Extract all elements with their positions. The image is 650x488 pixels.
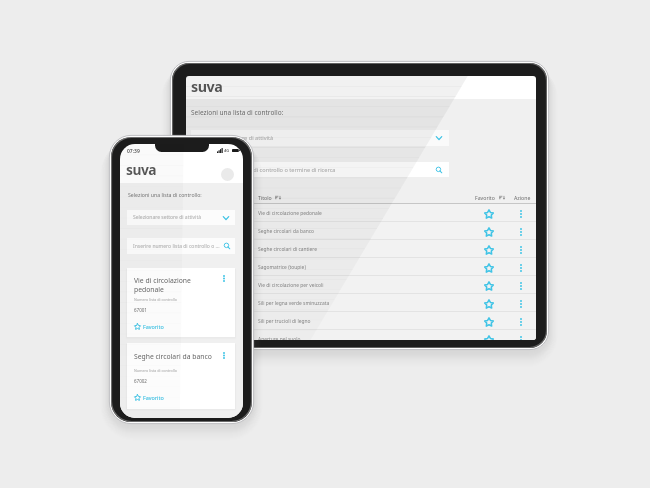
staticText: Seghe circolari da banco (134, 352, 212, 361)
button[interactable]: Account (221, 168, 234, 181)
staticText: Selezionare settore di attività (197, 134, 274, 142)
button[interactable]: Sili per legna verde sminuzzata (186, 294, 536, 312)
staticText: Numero lista di controllo (134, 297, 177, 302)
staticText: Vie di circolazione per veicoli (258, 282, 324, 289)
staticText: Favorito (143, 394, 164, 401)
staticText: Seghe circolari da banco (258, 228, 315, 235)
staticText: Selezioni una lista di controllo: (128, 191, 202, 198)
staticText: Selezioni una lista di controllo: (191, 108, 284, 117)
staticText: Sili per trucioli di legno (258, 318, 311, 325)
staticText: Azione (514, 194, 531, 201)
staticText: suva (126, 160, 157, 179)
button[interactable]: Vie di circolazione per veicoli (186, 276, 536, 294)
staticText: Numero lista di controllo (134, 368, 177, 373)
button[interactable]: Seghe circolari da banco (127, 343, 235, 409)
staticText: 07:39 (127, 148, 140, 155)
staticText: Aperture nel suolo (258, 336, 301, 340)
button[interactable]: Sagomatrice (toupie) (186, 258, 536, 276)
staticText: 67001 (134, 307, 147, 313)
staticText: pedonale (134, 285, 164, 294)
button[interactable]: Sili per trucioli di legno (186, 312, 536, 330)
staticText: 67002 (134, 378, 147, 384)
button[interactable]: Seghe circolari da banco (186, 222, 536, 240)
staticText: suva (191, 77, 223, 96)
button[interactable]: More options (223, 352, 225, 359)
button[interactable]: Vie di circolazione pedonale (186, 204, 536, 222)
staticText: Sili per legna verde sminuzzata (258, 300, 330, 307)
staticText: Selezionare settore di attività (133, 214, 202, 221)
button[interactable]: Vie di circolazione (127, 268, 235, 337)
button[interactable]: More options (223, 275, 225, 282)
button[interactable]: Inserire numero lista di controllo o ter… (191, 162, 449, 177)
staticText: Vie di circolazione (134, 276, 191, 285)
staticText: 4G (224, 148, 230, 153)
staticText: Seghe circolari di cantiere (258, 246, 318, 253)
staticText: Vie di circolazione pedonale (258, 210, 322, 217)
button[interactable]: Seghe circolari di cantiere (186, 240, 536, 258)
staticText: Favorito (143, 323, 164, 330)
staticText: Favorito (475, 194, 495, 201)
staticText: Titolo (258, 194, 272, 201)
button[interactable]: Selezionare settore di attività (127, 210, 235, 225)
button[interactable]: Inserire numero lista di controllo o ... (127, 238, 235, 254)
staticText: Inserire numero lista di controllo o ... (133, 243, 220, 250)
button[interactable]: Selezionare settore di attività (191, 130, 449, 146)
staticText: Inserire numero lista di controllo o ter… (197, 166, 336, 174)
button[interactable]: Aperture nel suolo (186, 330, 536, 340)
staticText: Sagomatrice (toupie) (258, 264, 306, 271)
